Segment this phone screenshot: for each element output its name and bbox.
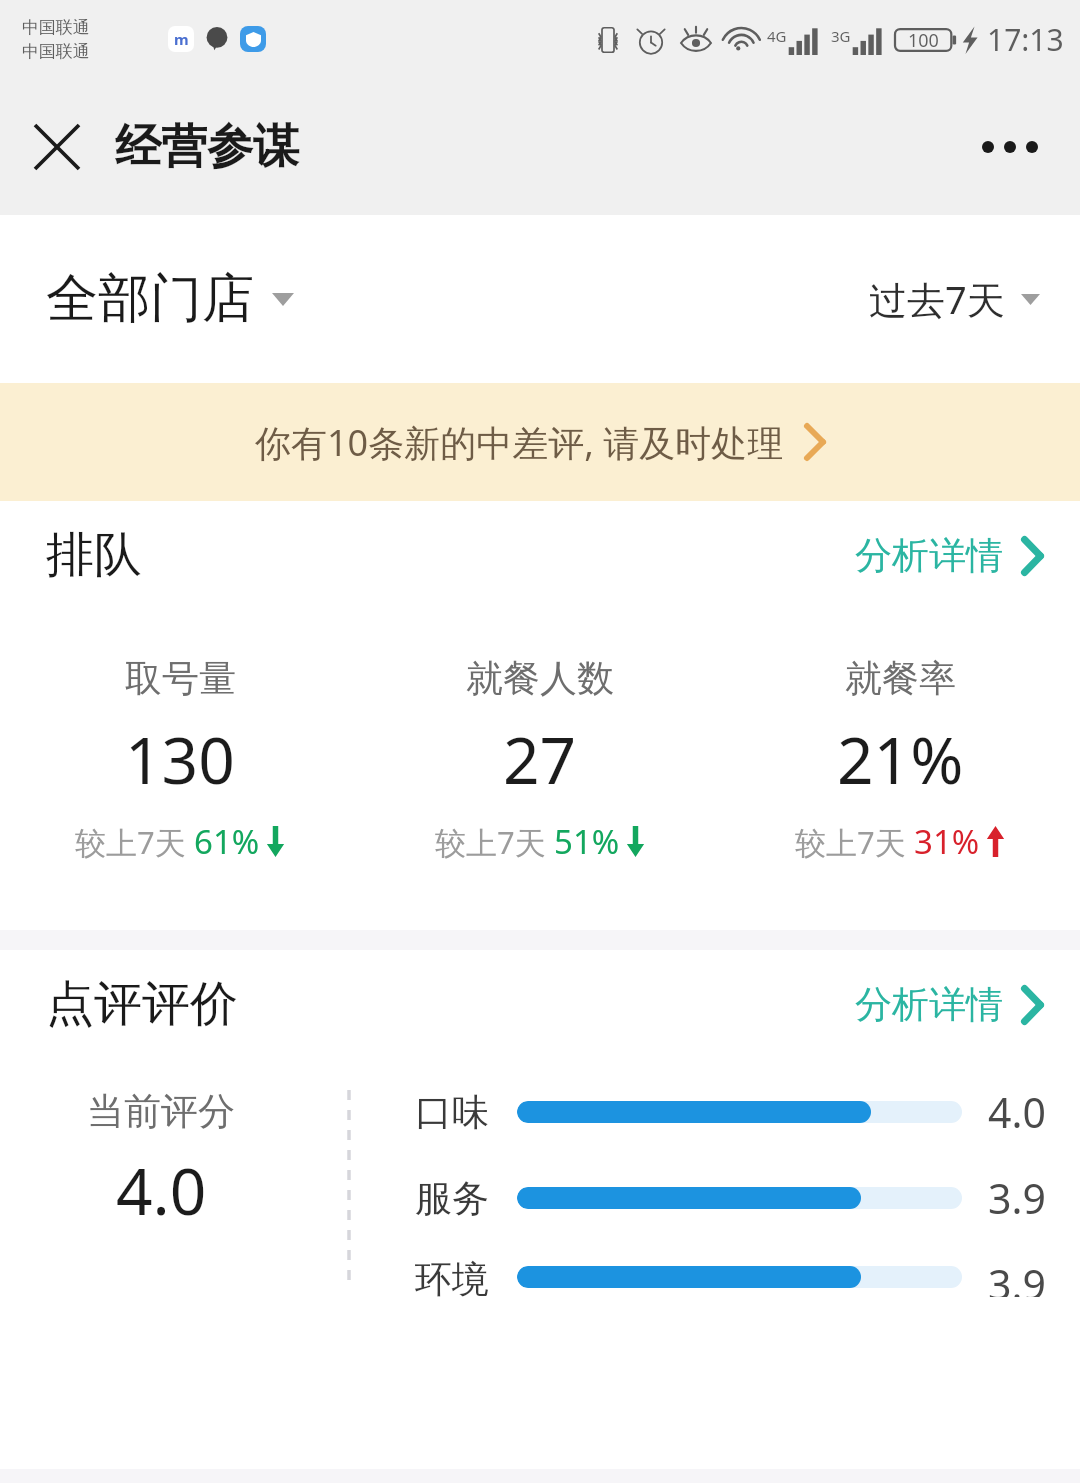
staticText: 过去7天 <box>869 273 1005 325</box>
staticText: 较上7天 <box>435 821 554 863</box>
button[interactable]: 过去7天 <box>869 273 1040 325</box>
staticText: 经营参谋 <box>115 118 299 176</box>
staticText: 你有10条新的中差评, 请及时处理 <box>255 418 784 467</box>
staticText: 点评评价 <box>46 974 238 1034</box>
staticText: 100 <box>908 28 939 53</box>
staticText: 21% <box>837 716 964 803</box>
staticText: 当前评分 <box>87 1088 235 1135</box>
staticText: 分析详情 <box>855 532 1003 579</box>
button[interactable]: 服务 <box>415 1170 1046 1226</box>
staticText: 27 <box>503 716 577 803</box>
staticText: 3G <box>831 26 851 46</box>
staticText: 4.0 <box>988 1084 1046 1140</box>
staticText: 分析详情 <box>855 981 1003 1028</box>
button[interactable]: 就餐率 <box>720 655 1080 864</box>
button[interactable]: More options <box>970 107 1050 187</box>
staticText: 较上7天 <box>75 821 194 863</box>
button[interactable]: 取号量 <box>0 655 360 864</box>
button[interactable]: 分析详情 <box>855 981 1044 1028</box>
staticText: 全部门店 <box>46 266 254 332</box>
button[interactable]: Close <box>22 112 92 182</box>
staticText: 51% <box>554 819 620 864</box>
staticText: 17:13 <box>987 19 1064 60</box>
staticText: 31% <box>914 819 980 864</box>
staticText: 61% <box>194 819 260 864</box>
staticText: 3.9 <box>988 1256 1046 1297</box>
button[interactable]: 你有10条新的中差评, 请及时处理 <box>0 383 1080 501</box>
staticText: 4G <box>767 26 787 46</box>
staticText: m <box>174 29 189 49</box>
staticText: 中国联通 <box>22 17 90 38</box>
staticText: 环境 <box>415 1256 489 1297</box>
button[interactable]: 环境 <box>415 1256 1046 1297</box>
button[interactable]: 分析详情 <box>855 532 1044 579</box>
button[interactable]: 就餐人数 <box>360 655 720 864</box>
button[interactable]: 全部门店 <box>46 266 294 332</box>
button[interactable]: 口味 <box>415 1084 1046 1140</box>
staticText: 口味 <box>415 1089 489 1136</box>
staticText: 130 <box>125 716 235 803</box>
staticText: 就餐人数 <box>466 655 614 702</box>
staticText: 4.0 <box>116 1147 207 1234</box>
staticText: 取号量 <box>125 655 236 702</box>
staticText: 就餐率 <box>845 655 956 702</box>
staticText: 排队 <box>46 525 142 585</box>
staticText: 服务 <box>415 1175 489 1222</box>
staticText: 中国联通 <box>22 41 90 62</box>
staticText: 较上7天 <box>795 821 914 863</box>
staticText: 3.9 <box>988 1170 1046 1226</box>
